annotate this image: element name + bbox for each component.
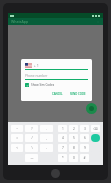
staticText: 2 [73,127,75,131]
staticText: 0 [73,156,75,160]
button[interactable]: < [11,144,23,152]
staticText: 7 [62,146,64,150]
staticText: = [16,136,18,140]
staticText: . [46,127,47,131]
button[interactable]: \ [25,144,38,152]
button[interactable]: * [58,154,67,162]
button[interactable]: Home [51,169,60,178]
button[interactable]: , [40,134,53,142]
button[interactable]: 7 [58,144,67,152]
button[interactable]: / [25,134,38,142]
staticText: ? [31,127,33,131]
button[interactable]: 8 [69,144,78,152]
button[interactable]: ~ [11,125,23,132]
staticText: 9 [84,146,86,150]
staticText: WhatsApp [11,19,29,24]
staticText: Phone number [25,74,48,78]
staticText: 1 [62,127,64,131]
button[interactable]: 4 [58,134,67,142]
staticText: - [46,146,47,150]
button[interactable]: 2 [69,125,78,132]
staticText: , [46,136,47,140]
staticText: ⌫ [93,127,98,131]
button[interactable]: SEND CODE [68,91,88,97]
button[interactable]: 9 [80,144,89,152]
staticText: 5 [73,136,75,140]
button[interactable]: Show Sim Codes [25,83,55,87]
staticText: / [31,136,33,140]
staticText: SEND CODE [70,92,86,96]
button[interactable]: ? [25,125,38,132]
button[interactable]: Enter [91,134,100,142]
staticText: 3 [84,127,86,131]
staticText: 6 [84,136,86,140]
staticText: — [30,156,34,160]
staticText: ~ [16,127,18,131]
staticText: # [83,156,86,160]
staticText: \ [31,146,33,150]
staticText: 8 [73,146,75,150]
button[interactable]: — [25,154,38,162]
button[interactable]: = [11,134,23,142]
button[interactable]: 1 [58,125,67,132]
staticText: * [62,156,64,160]
button[interactable]: New chat [86,103,97,114]
button[interactable]: 0 [69,154,78,162]
button[interactable]: 6 [80,134,89,142]
staticText: 1 [37,64,39,68]
button[interactable]: ⌫ [91,125,100,132]
button[interactable]: 1 [37,64,43,68]
staticText: < [16,146,18,150]
button[interactable]: # [80,154,89,162]
staticText: Show Sim Codes [31,83,55,87]
staticText: 4 [62,136,64,140]
button[interactable]: Phone number [25,74,88,78]
button[interactable]: 3 [80,125,89,132]
button[interactable]: 5 [69,134,78,142]
staticText: CANCEL [52,92,63,96]
button[interactable]: CANCEL [50,91,65,97]
staticText: + [34,64,36,68]
